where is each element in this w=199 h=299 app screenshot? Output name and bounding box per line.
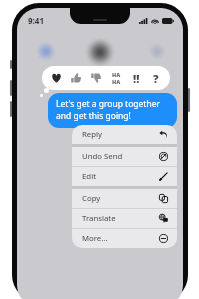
staticText: HA xyxy=(112,71,121,78)
button[interactable]: Let's get a group together and get this … xyxy=(48,93,177,128)
staticText: ? xyxy=(153,71,159,86)
button[interactable]: Exclamation xyxy=(126,66,146,90)
staticText: HA xyxy=(112,78,121,85)
staticText: !! xyxy=(133,71,140,86)
button[interactable]: Question xyxy=(146,66,166,90)
button[interactable]: Edit xyxy=(72,167,177,186)
staticText: Let's get a group together and get this … xyxy=(56,98,170,122)
staticText: Edit xyxy=(82,171,159,182)
staticText: Copy xyxy=(82,193,159,204)
button[interactable]: Reply xyxy=(72,125,177,144)
button[interactable]: Dislike xyxy=(86,66,106,90)
staticText: Undo Send xyxy=(82,151,159,162)
staticText: Translate xyxy=(82,213,159,224)
staticText: More... xyxy=(82,233,159,244)
button[interactable]: Copy xyxy=(72,189,177,208)
button[interactable]: Like xyxy=(66,66,86,90)
staticText: 9:41 xyxy=(28,15,44,26)
button[interactable]: Translate xyxy=(72,209,177,228)
button[interactable]: More... xyxy=(72,229,177,248)
button[interactable]: Haha xyxy=(106,66,126,90)
button[interactable]: Love xyxy=(46,66,66,90)
staticText: Reply xyxy=(82,129,159,140)
button[interactable]: Undo Send xyxy=(72,147,177,166)
